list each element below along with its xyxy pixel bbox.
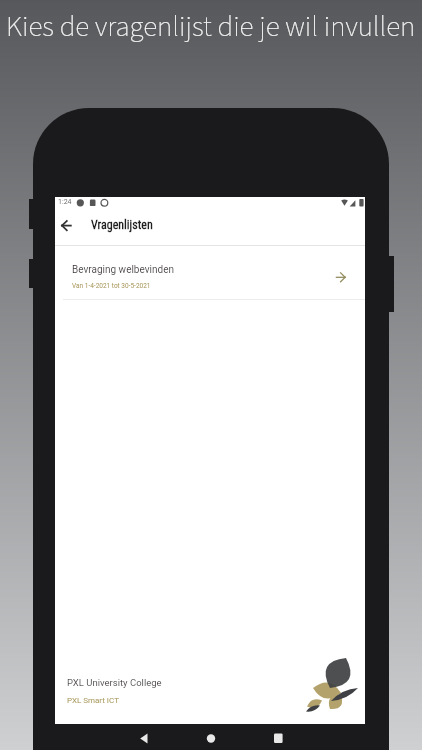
- staticText: 1:24: [58, 198, 72, 206]
- staticText: PXL Smart ICT: [67, 696, 119, 705]
- button[interactable]: [262, 727, 294, 750]
- staticText: Vragenlijsten: [91, 218, 153, 232]
- button[interactable]: [128, 727, 160, 750]
- button[interactable]: [55, 211, 85, 245]
- staticText: Van 1-4-2021 tot 30-5-2021: [72, 282, 151, 290]
- staticText: Bevraging welbevinden: [72, 264, 174, 276]
- button[interactable]: Bevraging welbevinden: [55, 246, 365, 300]
- staticText: PXL University College: [67, 677, 162, 688]
- button[interactable]: [195, 727, 227, 750]
- staticText: Kies de vragenlijst die je wil invullen: [6, 6, 416, 47]
